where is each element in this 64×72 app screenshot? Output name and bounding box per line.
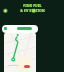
staticText: FIND FUEL: [23, 3, 42, 8]
staticText: Elm Street: [8, 64, 19, 67]
button[interactable]: [2, 25, 38, 33]
button[interactable]: End navigation: [24, 65, 30, 68]
staticText: & EV STATION: [20, 8, 45, 13]
